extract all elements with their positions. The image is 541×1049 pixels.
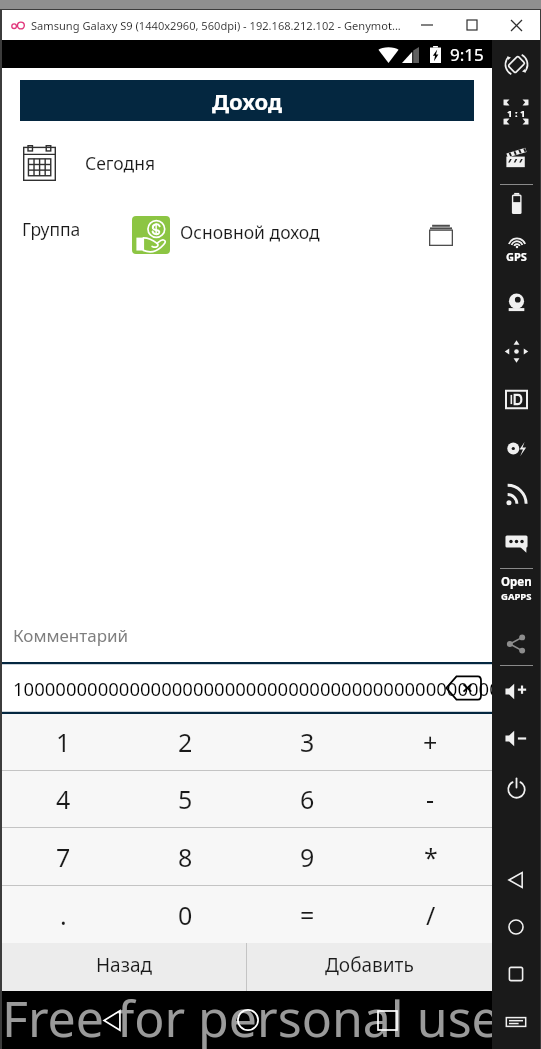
button[interactable]: Minimize bbox=[404, 10, 449, 40]
button[interactable]: Scale 1:1 bbox=[492, 89, 540, 135]
button[interactable]: Power bbox=[492, 765, 540, 811]
button[interactable]: GPS bbox=[492, 226, 540, 272]
staticText: 4 bbox=[56, 782, 71, 816]
button[interactable]: Комментарий bbox=[2, 617, 492, 662]
button[interactable]: 9 bbox=[246, 828, 369, 885]
button[interactable]: Screen record bbox=[492, 134, 540, 180]
staticText: Назад bbox=[96, 952, 153, 978]
staticText: Группа bbox=[22, 217, 81, 241]
button[interactable]: * bbox=[369, 828, 492, 885]
button[interactable]: Accelerometer bbox=[492, 328, 540, 374]
button[interactable]: Archive bbox=[419, 213, 463, 257]
staticText: Добавить bbox=[325, 952, 414, 978]
staticText: GAPPS bbox=[501, 590, 532, 603]
staticText: Free for personal use bbox=[2, 984, 492, 1042]
button[interactable]: = bbox=[246, 886, 369, 943]
button[interactable]: Share bbox=[492, 621, 540, 667]
staticText: . bbox=[60, 898, 67, 932]
button[interactable]: Identifiers bbox=[492, 376, 540, 422]
button[interactable]: Основной доход bbox=[132, 213, 320, 257]
button[interactable]: 6 bbox=[246, 771, 369, 827]
staticText: 6 bbox=[300, 782, 315, 816]
staticText: 9:15 bbox=[450, 43, 484, 66]
button[interactable]: Volume down bbox=[492, 715, 540, 761]
staticText: 9 bbox=[300, 840, 315, 874]
button[interactable]: 7 bbox=[2, 828, 124, 885]
staticText: * bbox=[424, 840, 438, 874]
button[interactable]: Battery bbox=[492, 180, 540, 226]
staticText: Open bbox=[501, 574, 532, 590]
staticText: = bbox=[300, 898, 315, 932]
staticText: GPS bbox=[506, 249, 527, 264]
button[interactable]: 0 bbox=[124, 886, 246, 943]
button[interactable]: Back bbox=[492, 857, 540, 903]
button[interactable]: Back bbox=[90, 991, 134, 1049]
staticText: 0 bbox=[178, 898, 193, 932]
button[interactable]: Recents bbox=[492, 951, 540, 997]
button[interactable]: . bbox=[2, 886, 124, 943]
button[interactable]: Добавить bbox=[247, 943, 492, 991]
button[interactable]: + bbox=[369, 714, 492, 770]
button[interactable]: 4 bbox=[2, 771, 124, 827]
button[interactable]: Backspace bbox=[446, 675, 481, 701]
button[interactable]: Назад bbox=[2, 943, 246, 991]
staticText: 3 bbox=[300, 725, 315, 759]
button[interactable]: Home bbox=[492, 904, 540, 950]
button[interactable]: Volume up bbox=[492, 668, 540, 714]
staticText: Сегодня bbox=[85, 151, 156, 175]
staticText: Samsung Galaxy S9 (1440x2960, 560dpi) - … bbox=[31, 18, 401, 33]
button[interactable]: - bbox=[369, 771, 492, 827]
staticText: 2 bbox=[178, 725, 193, 759]
button[interactable]: 1 bbox=[2, 714, 124, 770]
button[interactable]: Доход bbox=[20, 80, 474, 121]
button[interactable]: Сегодня bbox=[2, 138, 492, 188]
button[interactable]: / bbox=[369, 886, 492, 943]
staticText: Доход bbox=[212, 86, 283, 116]
button[interactable]: Maximize bbox=[449, 10, 494, 40]
button[interactable]: Close bbox=[494, 10, 539, 40]
staticText: 8 bbox=[178, 840, 193, 874]
staticText: 1 : 1 bbox=[507, 107, 526, 120]
button[interactable]: 5 bbox=[124, 771, 246, 827]
staticText: 7 bbox=[56, 840, 71, 874]
button[interactable]: Menu bbox=[492, 999, 540, 1045]
staticText: Комментарий bbox=[13, 624, 129, 647]
staticText: 5 bbox=[178, 782, 193, 816]
button[interactable]: Open GAPPS bbox=[492, 565, 540, 611]
button[interactable]: Rotate bbox=[492, 41, 540, 87]
button[interactable]: 2 bbox=[124, 714, 246, 770]
staticText: / bbox=[426, 898, 436, 932]
staticText: + bbox=[423, 725, 438, 759]
staticText: 1000000000000000000000000000000000000000… bbox=[13, 676, 492, 701]
button[interactable]: Camera bbox=[492, 280, 540, 326]
button[interactable]: Network bbox=[492, 472, 540, 518]
button[interactable]: Recents bbox=[365, 991, 409, 1049]
button[interactable]: Messages bbox=[492, 519, 540, 565]
staticText: 1 bbox=[56, 725, 71, 759]
button[interactable]: Disk IO bbox=[492, 425, 540, 471]
button[interactable]: 3 bbox=[246, 714, 369, 770]
button[interactable]: Home bbox=[226, 991, 270, 1049]
staticText: - bbox=[426, 782, 435, 816]
staticText: Основной доход bbox=[180, 220, 320, 244]
button[interactable]: 8 bbox=[124, 828, 246, 885]
